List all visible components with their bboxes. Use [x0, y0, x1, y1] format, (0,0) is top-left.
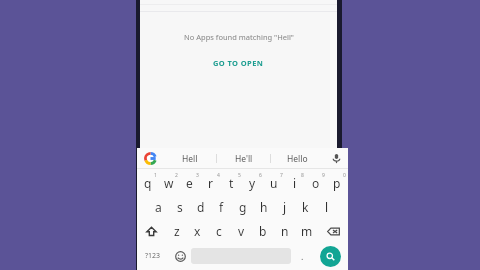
staticText: He'll — [235, 153, 253, 165]
staticText: b — [259, 223, 267, 239]
staticText: 1 — [154, 172, 157, 179]
staticText: i — [293, 175, 297, 191]
button[interactable]: y — [242, 171, 263, 195]
button[interactable]: o — [305, 171, 326, 195]
staticText: 5 — [238, 172, 241, 179]
button[interactable]: ?123 — [137, 243, 169, 269]
button[interactable]: Search — [313, 243, 348, 269]
staticText: 4 — [217, 172, 220, 179]
button[interactable]: Backspace — [318, 219, 348, 243]
button[interactable]: w — [158, 171, 179, 195]
button[interactable]: Hell — [163, 148, 216, 169]
staticText: t — [229, 175, 234, 191]
staticText: ?123 — [145, 251, 161, 261]
button[interactable]: Emoji — [169, 243, 191, 269]
staticText: n — [281, 223, 289, 239]
button[interactable]: q — [138, 171, 158, 195]
button[interactable]: g — [232, 195, 253, 219]
button[interactable]: v — [230, 219, 252, 243]
staticText: c — [216, 223, 222, 239]
button[interactable]: h — [253, 195, 274, 219]
button[interactable]: k — [295, 195, 316, 219]
staticText: m — [301, 223, 313, 239]
button[interactable]: c — [208, 219, 230, 243]
button[interactable]: e — [179, 171, 200, 195]
button[interactable]: r — [200, 171, 221, 195]
staticText: e — [186, 175, 193, 191]
staticText: y — [249, 175, 256, 191]
staticText: u — [270, 175, 278, 191]
staticText: 9 — [322, 172, 325, 179]
button[interactable]: m — [296, 219, 318, 243]
staticText: o — [312, 175, 320, 191]
button[interactable]: Shift — [137, 219, 166, 243]
button[interactable]: . — [291, 243, 313, 269]
button[interactable]: f — [211, 195, 232, 219]
staticText: 2 — [175, 172, 178, 179]
staticText: s — [177, 199, 183, 215]
staticText: x — [194, 223, 201, 239]
staticText: l — [325, 199, 329, 215]
staticText: p — [333, 175, 341, 191]
button[interactable]: GO TO OPEN — [207, 56, 270, 70]
button[interactable]: Hello — [271, 148, 324, 169]
staticText: w — [164, 175, 174, 191]
button[interactable]: Voice input — [324, 148, 348, 169]
staticText: g — [239, 199, 247, 215]
staticText: 8 — [301, 172, 304, 179]
button[interactable]: z — [166, 219, 187, 243]
staticText: v — [238, 223, 245, 239]
staticText: z — [174, 223, 180, 239]
staticText: Hell — [182, 153, 198, 165]
button[interactable]: p — [326, 171, 347, 195]
staticText: GO TO OPEN — [213, 58, 264, 68]
staticText: h — [260, 199, 268, 215]
staticText: 3 — [196, 172, 199, 179]
staticText: 0 — [343, 172, 346, 179]
button[interactable]: u — [263, 171, 284, 195]
button[interactable]: b — [252, 219, 274, 243]
staticText: k — [302, 199, 309, 215]
staticText: f — [219, 199, 224, 215]
button[interactable]: l — [316, 195, 337, 219]
button[interactable]: a — [148, 195, 169, 219]
button[interactable]: j — [274, 195, 295, 219]
staticText: No Apps found matching "Hell" — [184, 32, 294, 42]
button[interactable]: x — [187, 219, 208, 243]
staticText: Hello — [287, 153, 308, 165]
staticText: q — [144, 175, 152, 191]
staticText: 6 — [259, 172, 262, 179]
staticText: . — [301, 250, 304, 262]
button[interactable]: n — [274, 219, 296, 243]
staticText: r — [208, 175, 213, 191]
button[interactable]: t — [221, 171, 242, 195]
button[interactable]: i — [284, 171, 305, 195]
button[interactable]: d — [190, 195, 211, 219]
staticText: j — [283, 199, 287, 215]
staticText: a — [155, 199, 162, 215]
button[interactable]: He'll — [217, 148, 270, 169]
button[interactable]: s — [169, 195, 190, 219]
button[interactable]: Google — [137, 148, 163, 169]
staticText: d — [197, 199, 205, 215]
staticText: 7 — [280, 172, 283, 179]
